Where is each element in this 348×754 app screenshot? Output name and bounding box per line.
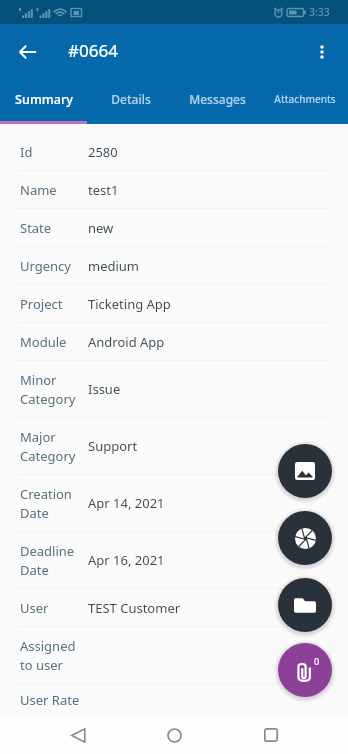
button[interactable]: Home [155, 716, 193, 754]
button[interactable]: Project [0, 285, 348, 322]
staticText: State [20, 219, 88, 237]
staticText: Attachments [274, 92, 336, 106]
staticText: Issue [88, 380, 121, 398]
staticText: Project [20, 295, 88, 313]
staticText: Ticketing App [88, 295, 171, 313]
staticText: Deadline Date [20, 542, 88, 579]
button[interactable]: Major Category [0, 418, 348, 474]
staticText: medium [88, 257, 140, 275]
button[interactable]: Back [8, 32, 48, 72]
button[interactable]: Deadline Date [0, 532, 348, 588]
staticText: Messages [189, 91, 246, 107]
button[interactable]: Attachments [278, 643, 332, 697]
staticText: Id [20, 143, 88, 161]
button[interactable]: Summary [0, 80, 87, 124]
staticText: 0 [314, 655, 320, 667]
staticText: 2580 [88, 143, 118, 161]
staticText: Name [20, 181, 88, 199]
button[interactable]: Urgency [0, 247, 348, 284]
staticText: Apr 14, 2021 [88, 494, 165, 512]
button[interactable]: Name [0, 171, 348, 208]
staticText: Module [20, 333, 88, 351]
button[interactable]: Folder [278, 578, 332, 632]
staticText: new [88, 219, 114, 237]
staticText: TEST Customer [88, 599, 181, 617]
button[interactable]: Details [87, 80, 174, 124]
staticText: 3:33 [309, 5, 330, 19]
staticText: Assigned to user [20, 637, 88, 674]
button[interactable]: Messages [174, 80, 261, 124]
button[interactable]: Id [0, 133, 348, 170]
staticText: Support [88, 437, 138, 455]
button[interactable]: Image [278, 444, 332, 498]
button[interactable]: User [0, 589, 348, 626]
button[interactable]: State [0, 209, 348, 246]
staticText: User Rate [20, 691, 88, 709]
staticText: Urgency [20, 257, 88, 275]
button[interactable]: Assigned to user [0, 627, 348, 683]
button[interactable]: Minor Category [0, 361, 348, 417]
button[interactable]: Recents [252, 716, 290, 754]
staticText: Android App [88, 333, 165, 351]
button[interactable]: Creation Date [0, 475, 348, 531]
staticText: Summary [15, 91, 73, 108]
staticText: test1 [88, 181, 119, 199]
staticText: #0664 [68, 39, 118, 62]
staticText: Details [111, 91, 151, 107]
button[interactable]: More options [302, 32, 342, 72]
staticText: User [20, 599, 88, 617]
button[interactable]: Back [59, 716, 97, 754]
button[interactable]: Module [0, 323, 348, 360]
button[interactable]: User Rate [0, 684, 348, 716]
staticText: Major Category [20, 428, 88, 465]
staticText: Minor Category [20, 371, 88, 408]
button[interactable]: Attachments [261, 80, 348, 124]
staticText: Apr 16, 2021 [88, 551, 165, 569]
button[interactable]: Camera [278, 511, 332, 565]
staticText: Creation Date [20, 485, 88, 522]
